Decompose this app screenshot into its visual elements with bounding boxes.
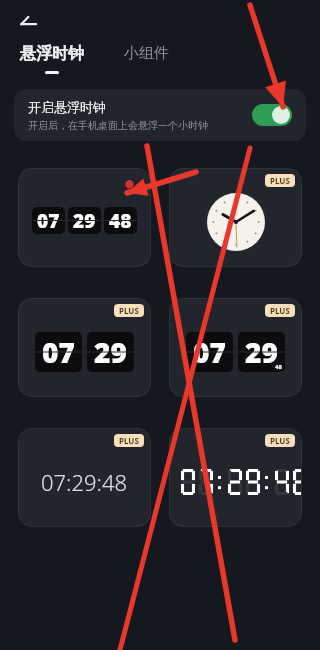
- staticText: 07: [193, 333, 226, 371]
- button[interactable]: PLUS: [169, 168, 302, 267]
- staticText: 开启后，在手机桌面上会悬浮一个小时钟: [28, 119, 208, 132]
- staticText: PLUS: [270, 435, 290, 446]
- staticText: 小组件: [124, 44, 169, 63]
- staticText: 29: [94, 333, 127, 371]
- staticText: PLUS: [270, 175, 290, 186]
- button[interactable]: PLUS: [169, 428, 302, 527]
- staticText: PLUS: [270, 305, 290, 316]
- staticText: 48: [275, 363, 282, 371]
- button[interactable]: 悬浮时钟: [18, 44, 86, 74]
- staticText: 29: [245, 333, 278, 371]
- button[interactable]: PLUS: [169, 298, 302, 397]
- button[interactable]: 开启悬浮时钟: [14, 89, 306, 141]
- staticText: 07: [37, 208, 60, 234]
- staticText: 07: [42, 333, 75, 371]
- button[interactable]: 07: [18, 168, 151, 267]
- button[interactable]: Back: [12, 6, 44, 38]
- button[interactable]: Toggle floating clock: [252, 104, 292, 126]
- staticText: 29: [73, 208, 96, 234]
- staticText: PLUS: [119, 435, 139, 446]
- staticText: 悬浮时钟: [20, 44, 84, 64]
- button[interactable]: 小组件: [122, 44, 171, 63]
- staticText: 48: [109, 208, 132, 234]
- button[interactable]: PLUS: [18, 428, 151, 527]
- staticText: 开启悬浮时钟: [28, 99, 106, 115]
- staticText: PLUS: [119, 305, 139, 316]
- staticText: 07:29:48: [41, 467, 128, 497]
- button[interactable]: PLUS: [18, 298, 151, 397]
